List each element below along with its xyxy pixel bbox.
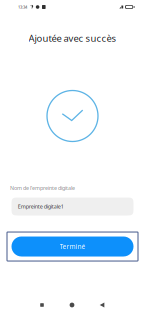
staticText: 13:34 (18, 4, 27, 10)
button[interactable]: Terminé (7, 232, 138, 261)
staticText: Nom de l'empreinte digitale (10, 184, 75, 192)
staticText: Empreinte digitale1 (18, 203, 64, 210)
staticText: Ajoutée avec succès (28, 32, 116, 44)
button[interactable]: Home (57, 296, 87, 314)
button[interactable]: Back (87, 296, 117, 314)
staticText: Terminé (59, 242, 85, 251)
button[interactable]: Recent apps (27, 296, 57, 314)
